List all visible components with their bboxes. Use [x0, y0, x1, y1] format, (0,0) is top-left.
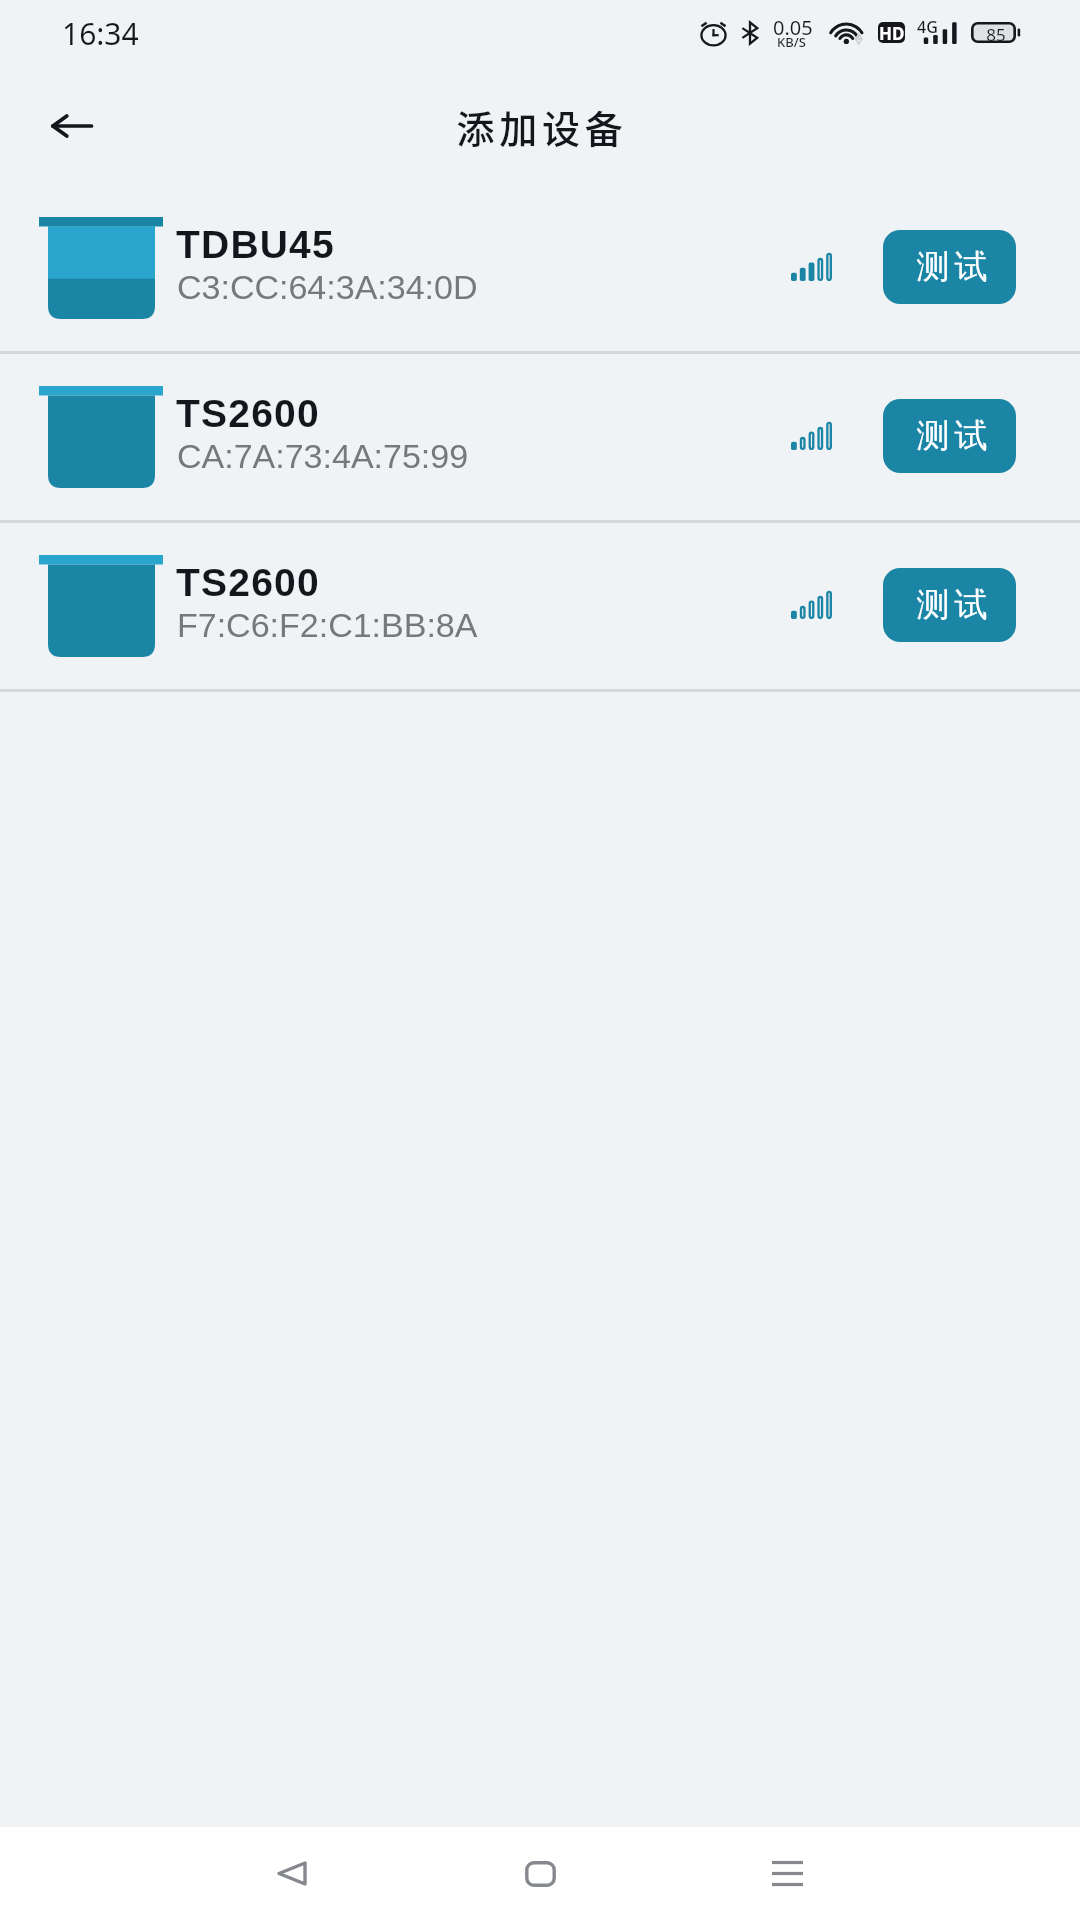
- staticText: 测试: [914, 246, 990, 288]
- button[interactable]: 测试: [883, 568, 1016, 642]
- staticText: F7:C6:F2:C1:BB:8A: [177, 606, 478, 644]
- staticText: C3:CC:64:3A:34:0D: [177, 268, 478, 306]
- staticText: 16:34: [62, 13, 139, 54]
- staticText: 测试: [914, 584, 990, 626]
- staticText: TDBU45: [176, 223, 335, 267]
- button[interactable]: Navigate back: [244, 1827, 339, 1920]
- button[interactable]: TS2600: [0, 354, 1080, 520]
- staticText: 4G: [917, 16, 938, 38]
- button[interactable]: 测试: [883, 230, 1016, 304]
- button[interactable]: 测试: [883, 399, 1016, 473]
- staticText: TS2600: [176, 392, 320, 436]
- button[interactable]: TDBU45: [0, 185, 1080, 351]
- staticText: 0.05: [773, 14, 813, 41]
- staticText: HD: [879, 22, 905, 43]
- button[interactable]: Home screen: [493, 1827, 588, 1920]
- staticText: 测试: [914, 415, 990, 457]
- staticText: 添加设备: [456, 99, 628, 154]
- staticText: 85: [985, 23, 1007, 46]
- staticText: CA:7A:73:4A:75:99: [177, 437, 469, 475]
- button[interactable]: TS2600: [0, 523, 1080, 689]
- button[interactable]: Back: [27, 82, 115, 170]
- staticText: TS2600: [176, 561, 320, 605]
- staticText: KB/S: [777, 33, 806, 51]
- button[interactable]: Recent apps: [740, 1827, 835, 1920]
